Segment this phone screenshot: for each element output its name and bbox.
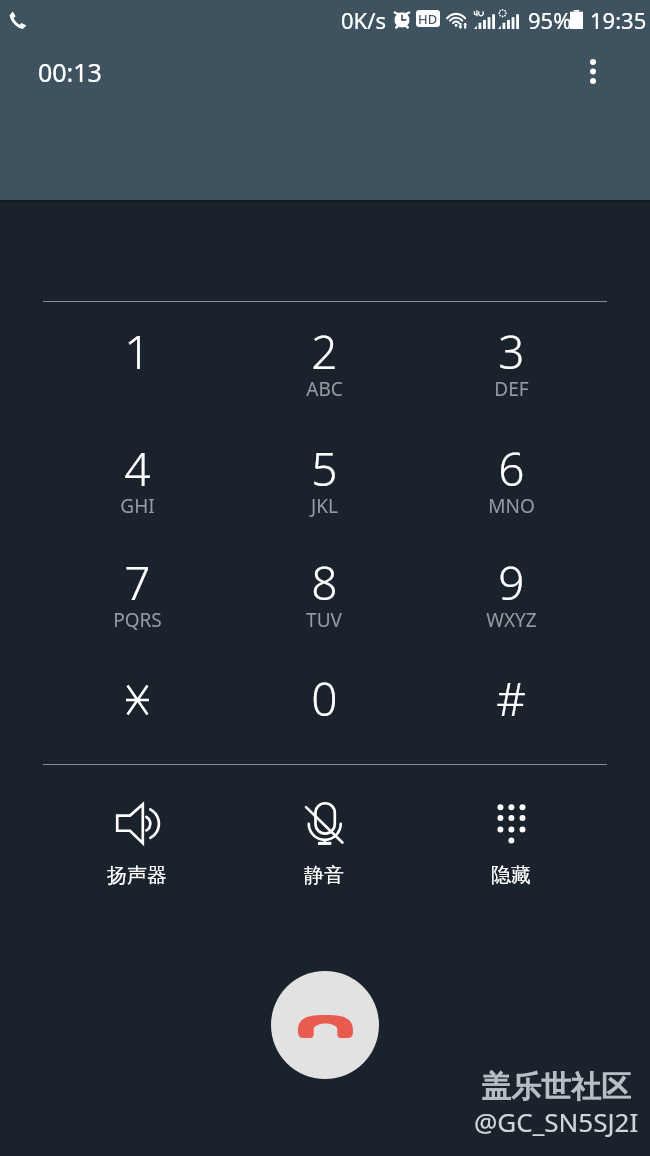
staticText: @GC_SN5SJ2I: [474, 1104, 639, 1139]
staticText: DEF: [494, 376, 529, 402]
staticText: 扬声器: [107, 863, 167, 888]
staticText: WXYZ: [486, 607, 537, 633]
staticText: 9: [498, 551, 525, 614]
button[interactable]: 静音: [252, 803, 396, 908]
staticText: 静音: [304, 863, 344, 888]
button[interactable]: 1: [44, 320, 230, 432]
staticText: 19:35: [590, 5, 647, 35]
button[interactable]: 隐藏: [439, 803, 583, 908]
staticText: #: [496, 667, 526, 730]
staticText: TUV: [306, 607, 342, 633]
button[interactable]: 7: [44, 551, 230, 663]
staticText: 7: [124, 551, 151, 614]
staticText: 盖乐世社区: [481, 1068, 631, 1106]
staticText: PQRS: [113, 607, 162, 633]
staticText: HD: [418, 10, 438, 27]
staticText: MNO: [488, 493, 535, 519]
button[interactable]: 扬声器: [65, 803, 209, 908]
staticText: 2: [311, 320, 338, 383]
button[interactable]: 2: [231, 320, 417, 432]
staticText: 1: [124, 320, 151, 383]
staticText: 00:13: [38, 55, 102, 89]
button[interactable]: 5: [231, 437, 417, 549]
staticText: 0K/s: [341, 5, 386, 35]
staticText: 3: [498, 320, 525, 383]
staticText: 5: [311, 437, 338, 500]
staticText: 8: [311, 551, 338, 614]
staticText: ABC: [306, 376, 343, 402]
button[interactable]: 6: [418, 437, 604, 549]
staticText: 隐藏: [491, 863, 531, 888]
staticText: 4: [124, 437, 151, 500]
staticText: 6: [498, 437, 525, 500]
button[interactable]: 4: [44, 437, 230, 549]
button[interactable]: 8: [231, 551, 417, 663]
staticText: 95%: [528, 5, 572, 35]
button[interactable]: 3: [418, 320, 604, 432]
button[interactable]: #: [418, 667, 604, 779]
staticText: JKL: [311, 493, 338, 519]
button[interactable]: 9: [418, 551, 604, 663]
button[interactable]: [44, 667, 230, 779]
button[interactable]: 0: [231, 667, 417, 779]
staticText: 0: [311, 667, 338, 730]
button[interactable]: More options: [569, 47, 617, 95]
button[interactable]: End call: [271, 971, 379, 1079]
staticText: GHI: [120, 493, 155, 519]
